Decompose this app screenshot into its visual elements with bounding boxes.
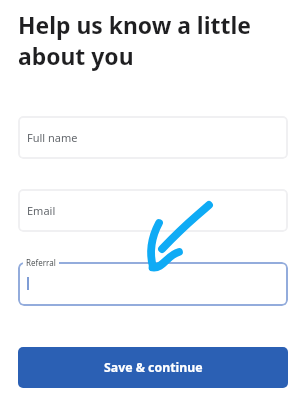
button[interactable]: Email xyxy=(18,189,288,232)
staticText: Referral xyxy=(26,257,56,268)
staticText: Full name xyxy=(27,130,78,145)
button[interactable] xyxy=(18,262,288,306)
button[interactable]: Full name xyxy=(18,116,288,159)
staticText: Help us know a little about you xyxy=(18,10,286,71)
staticText: Save & continue xyxy=(104,359,203,376)
other: Annotation arrow pointing to referral fi… xyxy=(144,196,220,276)
button[interactable]: Save & continue xyxy=(18,347,288,388)
staticText: Email xyxy=(27,203,56,218)
